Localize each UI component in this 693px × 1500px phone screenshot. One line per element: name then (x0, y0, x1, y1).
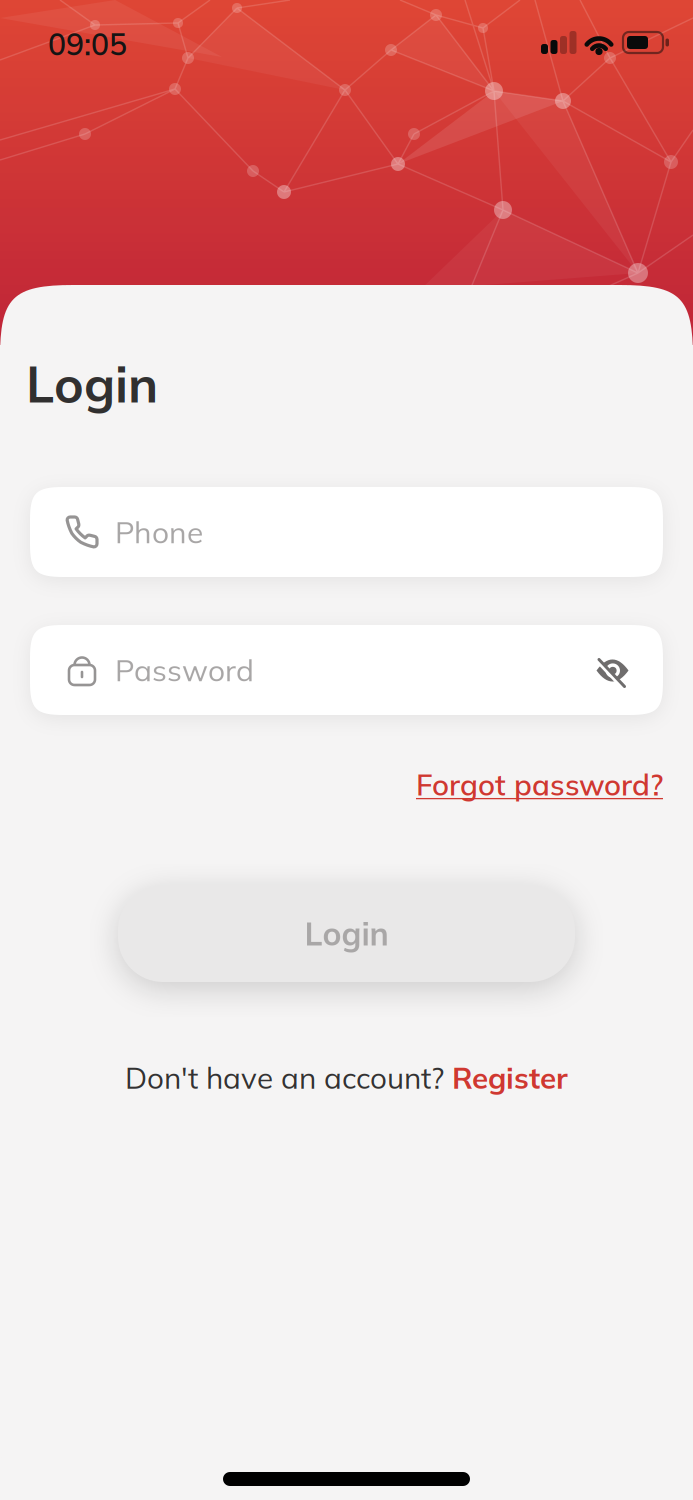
staticText: Password (115, 651, 254, 689)
button[interactable]: Phone (30, 487, 663, 577)
button[interactable]: Login (118, 885, 575, 982)
staticText: Login (26, 352, 158, 415)
button[interactable]: Password (30, 625, 663, 715)
button[interactable]: Show password (593, 650, 633, 690)
staticText: Login (304, 913, 388, 954)
staticText: Forgot password? (416, 766, 663, 803)
staticText: 09:05 (48, 25, 127, 63)
button[interactable]: Forgot password? (416, 766, 663, 803)
staticText: Don't have an account? (125, 1059, 444, 1096)
button[interactable]: Register (452, 1059, 568, 1096)
staticText: Phone (115, 513, 203, 551)
staticText: Register (452, 1059, 568, 1096)
